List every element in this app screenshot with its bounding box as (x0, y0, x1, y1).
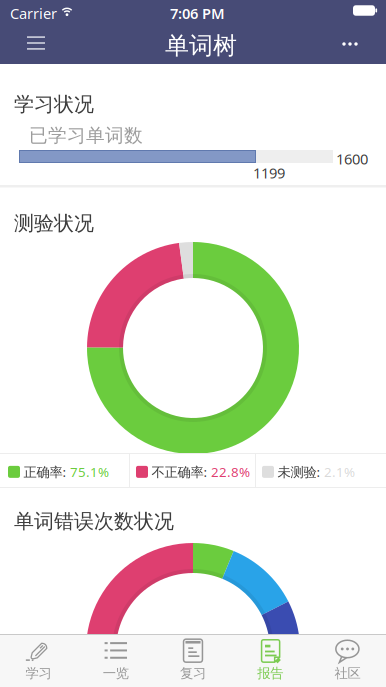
staticText: 已学习单词数 (29, 124, 143, 147)
button[interactable]: More (328, 22, 372, 66)
staticText: 测验状况 (14, 211, 94, 236)
button[interactable]: 一览 (77, 634, 154, 687)
staticText: 单词树 (165, 31, 237, 60)
staticText: 一览 (103, 665, 129, 681)
staticText: 7:06 PM (170, 3, 225, 23)
staticText: 学习状况 (14, 92, 94, 117)
button[interactable]: 学习 (0, 634, 77, 687)
staticText: 报告 (257, 665, 283, 681)
staticText: 社区 (334, 665, 360, 681)
staticText: 1199 (253, 163, 285, 182)
button[interactable]: 社区 (309, 634, 386, 687)
staticText: Carrier (10, 3, 57, 23)
staticText: 1600 (336, 149, 368, 168)
staticText: 正确率: (23, 463, 66, 481)
button[interactable]: 报告 (232, 634, 309, 687)
staticText: 22.8% (211, 463, 250, 481)
staticText: 75.1% (70, 463, 109, 481)
staticText: 复习 (180, 665, 206, 681)
staticText: 未测验: (277, 463, 320, 481)
staticText: 不正确率: (151, 463, 207, 481)
staticText: 学习 (26, 665, 52, 681)
button[interactable]: Menu (14, 21, 58, 65)
staticText: 单词错误次数状况 (14, 509, 174, 534)
button[interactable]: 复习 (154, 634, 232, 687)
staticText: 2.1% (324, 463, 355, 481)
